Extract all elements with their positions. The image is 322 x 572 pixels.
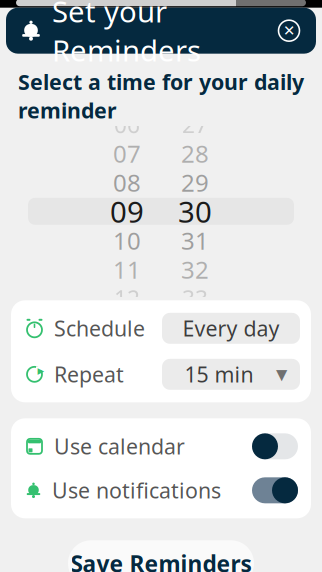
staticText: ▼: [276, 366, 287, 383]
staticText: 07: [113, 137, 141, 169]
staticText: 33: [182, 283, 208, 313]
button[interactable]: Use notifications: [11, 471, 311, 509]
staticText: 08: [113, 166, 141, 198]
staticText: 29: [181, 166, 209, 198]
staticText: 32: [181, 253, 209, 285]
staticText: Repeat: [54, 360, 124, 388]
staticText: 12: [114, 283, 140, 313]
staticText: 28: [181, 137, 209, 169]
button[interactable]: Use calendar: [11, 427, 311, 465]
staticText: 31: [181, 224, 209, 256]
button[interactable]: Save Reminders: [68, 540, 254, 572]
staticText: Schedule: [54, 314, 145, 342]
staticText: Use notifications: [52, 476, 221, 504]
button[interactable]: Schedule: [11, 307, 311, 349]
staticText: Set your Reminders: [52, 0, 201, 70]
staticText: 15 min: [184, 360, 253, 388]
staticText: 06: [114, 109, 140, 139]
staticText: Every day: [182, 314, 279, 342]
staticText: 05: [114, 80, 140, 110]
staticText: ✕: [283, 22, 295, 39]
button[interactable]: Close: [270, 12, 308, 50]
staticText: ▸: [37, 363, 44, 378]
staticText: 11: [113, 253, 141, 285]
staticText: 27: [182, 109, 208, 139]
staticText: Use calendar: [54, 432, 185, 460]
staticText: Save Reminders: [70, 548, 251, 572]
staticText: 09: [110, 192, 144, 231]
staticText: 13: [114, 312, 140, 342]
staticText: 26: [182, 80, 208, 110]
staticText: 30: [178, 192, 212, 231]
staticText: 10: [113, 224, 141, 256]
staticText: 34: [182, 312, 208, 342]
staticText: Select a time for your daily reminder: [18, 68, 304, 124]
button[interactable]: ▸: [11, 353, 311, 395]
